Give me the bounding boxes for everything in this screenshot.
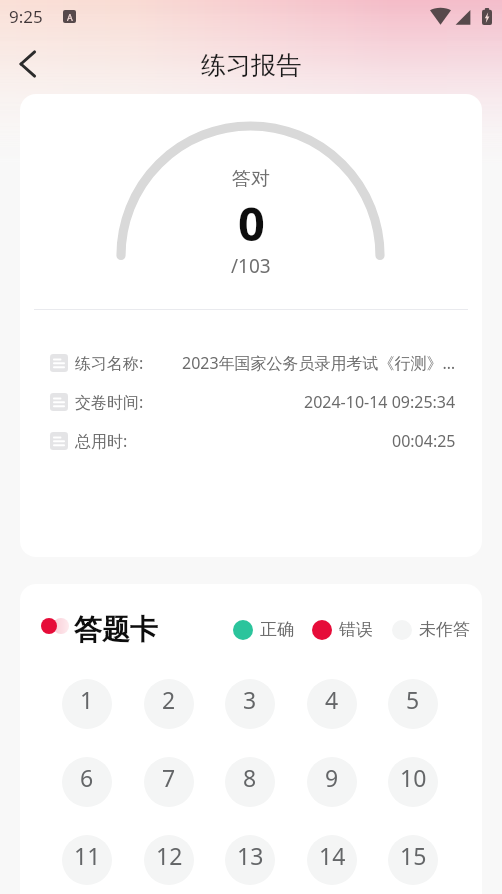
button[interactable]: 11 [62, 835, 112, 885]
staticText: /103 [231, 253, 271, 279]
button[interactable]: 10 [388, 757, 438, 807]
staticText: 2024-10-14 09:25:34 [304, 391, 456, 413]
staticText: 练习名称: [75, 352, 144, 374]
button[interactable]: 13 [225, 835, 275, 885]
staticText: 错误 [339, 619, 373, 640]
staticText: 交卷时间: [75, 391, 144, 413]
staticText: 14 [319, 840, 346, 871]
staticText: 正确 [260, 619, 294, 640]
staticText: 00:04:25 [392, 430, 456, 452]
staticText: 0 [238, 191, 265, 255]
staticText: 2 [162, 684, 176, 715]
staticText: 1 [80, 684, 94, 715]
staticText: 6 [80, 762, 94, 793]
staticText: 13 [237, 840, 264, 871]
button[interactable]: 7 [144, 757, 194, 807]
button[interactable]: 12 [144, 835, 194, 885]
staticText: 9 [325, 762, 339, 793]
button[interactable]: 2 [144, 679, 194, 729]
button[interactable]: 3 [225, 679, 275, 729]
staticText: 5 [406, 684, 420, 715]
staticText: 7 [162, 762, 176, 793]
staticText: 11 [74, 840, 101, 871]
staticText: 2023年国家公务员录用考试《行测》… [182, 352, 456, 374]
button[interactable]: 9 [307, 757, 357, 807]
button[interactable]: 8 [225, 757, 275, 807]
staticText: 答对 [232, 167, 270, 191]
staticText: 总用时: [75, 430, 128, 452]
staticText: 8 [243, 762, 257, 793]
staticText: A [67, 11, 73, 23]
button[interactable]: 1 [62, 679, 112, 729]
staticText: 3 [243, 684, 257, 715]
staticText: 4 [325, 684, 339, 715]
staticText: 未作答 [419, 619, 470, 640]
staticText: 练习报告 [201, 50, 301, 81]
button[interactable]: 5 [388, 679, 438, 729]
button[interactable]: Back [4, 40, 52, 88]
button[interactable]: 15 [388, 835, 438, 885]
staticText: 10 [400, 762, 427, 793]
button[interactable]: 14 [307, 835, 357, 885]
staticText: 15 [400, 840, 427, 871]
button[interactable]: 4 [307, 679, 357, 729]
staticText: 答题卡 [74, 612, 158, 647]
button[interactable]: 6 [62, 757, 112, 807]
staticText: 9:25 [9, 5, 43, 28]
staticText: 12 [156, 840, 183, 871]
